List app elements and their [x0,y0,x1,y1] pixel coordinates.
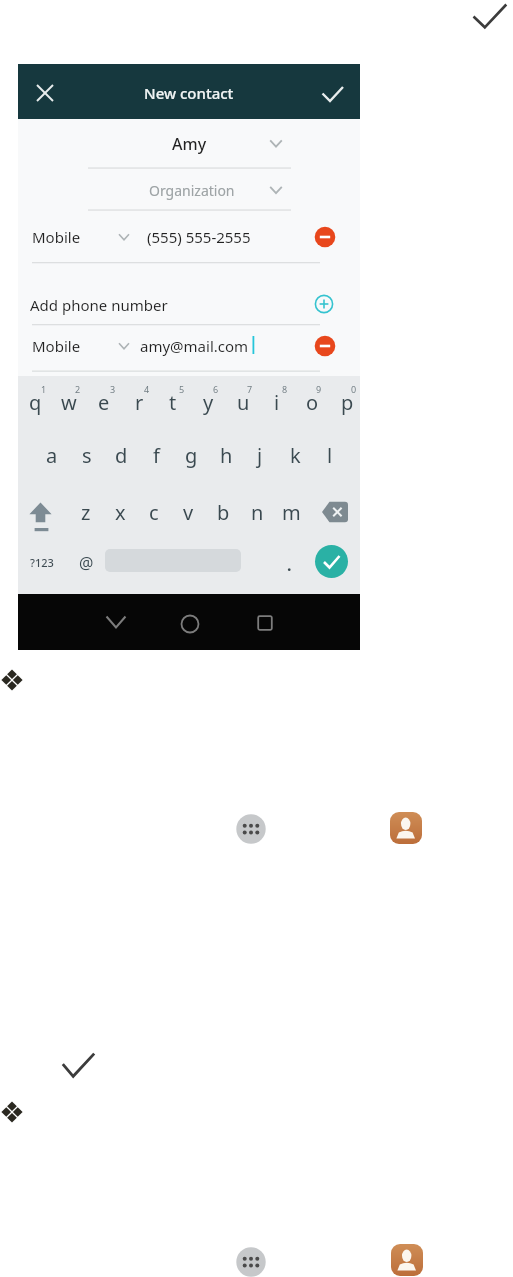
button[interactable] [390,812,422,844]
staticText: k [290,442,301,469]
button[interactable] [318,79,346,107]
button[interactable] [106,612,126,632]
staticText: Amy [172,133,207,155]
button[interactable] [315,545,348,578]
staticText: @ [79,552,94,574]
staticText: 7 [247,383,253,395]
staticText: s [82,442,92,469]
staticText: e [98,389,110,416]
staticText: 2 [75,383,81,395]
button[interactable] [313,293,335,315]
staticText: 0 [351,383,357,395]
button[interactable] [314,226,336,248]
staticText: y [203,389,214,416]
staticText: . [287,554,292,574]
button[interactable] [180,614,200,634]
staticText: ?123 [30,555,54,570]
staticText: 9 [316,383,322,395]
staticText: 5 [179,383,185,395]
staticText: 3 [110,383,116,395]
staticText: Organization [149,181,235,200]
staticText: a [46,442,58,469]
staticText: z [81,499,91,526]
button[interactable] [24,496,58,532]
staticText: m [282,499,301,526]
staticText: amy@mail.com [140,336,249,356]
staticText: Mobile [32,336,81,356]
staticText: (555) 555-2555 [147,227,251,247]
staticText: i [274,389,280,416]
staticText: g [185,442,198,469]
staticText: 1 [41,383,47,395]
staticText: b [217,499,230,526]
button[interactable] [255,613,275,633]
staticText: 4 [144,383,150,395]
staticText: h [220,442,233,469]
staticText: l [327,442,333,469]
staticText: Mobile [32,227,81,247]
staticText: r [135,389,144,416]
button[interactable] [391,1244,423,1276]
staticText: v [183,499,194,526]
staticText: f [153,442,160,469]
staticText: 8 [282,383,288,395]
staticText: New contact [144,83,234,103]
staticText: t [169,389,177,416]
button[interactable] [322,501,356,523]
staticText: d [115,442,128,469]
staticText: o [306,389,319,416]
staticText: n [251,499,264,526]
staticText: w [61,389,77,416]
staticText: u [237,389,250,416]
staticText: 6 [213,383,219,395]
button[interactable] [314,335,336,357]
button[interactable] [31,79,59,107]
staticText: p [341,389,354,416]
button[interactable] [236,1247,266,1277]
staticText: c [149,499,159,526]
staticText: j [257,442,263,469]
button[interactable] [236,814,266,844]
staticText: Add phone number [30,295,168,315]
staticText: q [29,389,42,416]
staticText: x [115,499,126,526]
